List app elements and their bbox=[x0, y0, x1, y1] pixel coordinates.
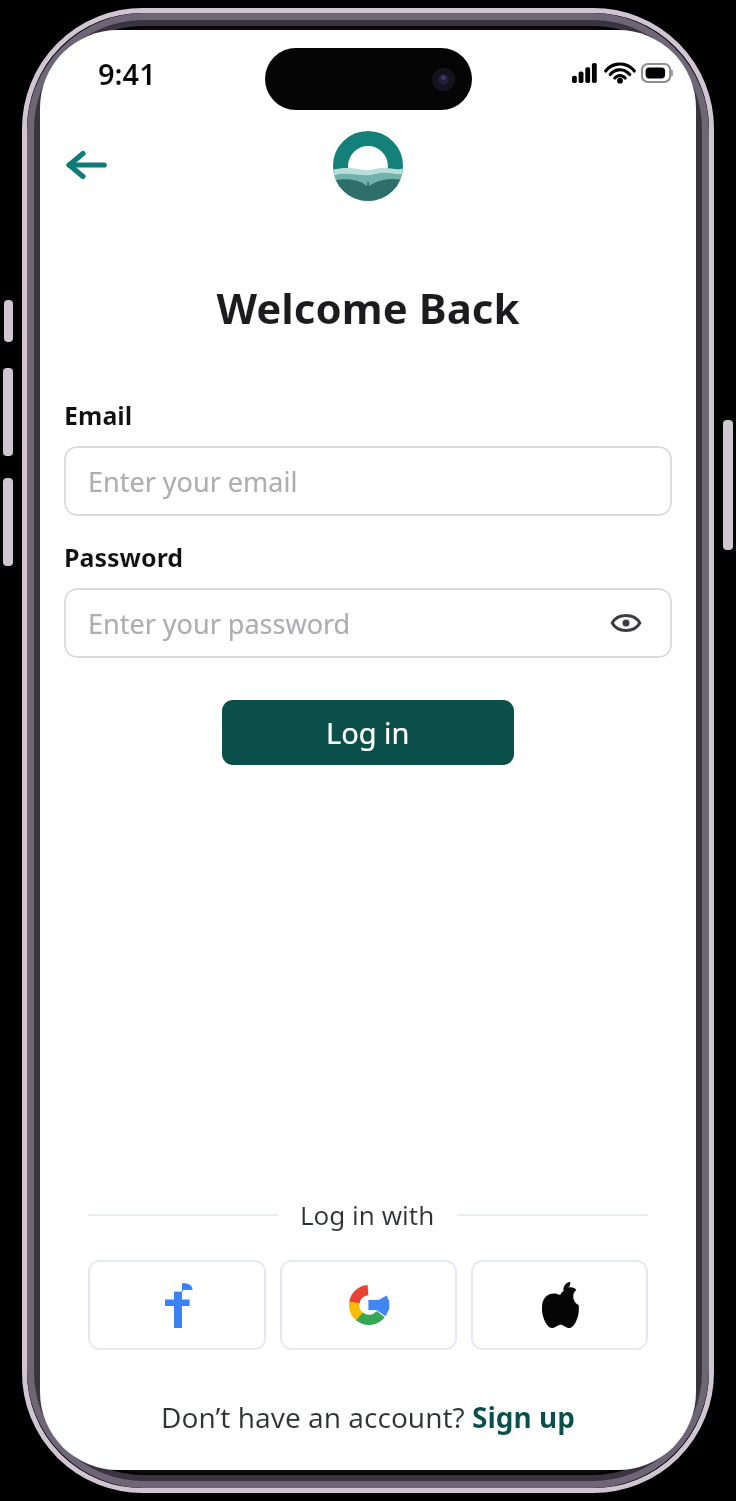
staticText: Password bbox=[64, 540, 184, 574]
staticText: Enter your password bbox=[88, 605, 351, 642]
button[interactable]: Log in bbox=[222, 700, 514, 765]
button[interactable]: Sign up bbox=[472, 1398, 575, 1436]
staticText: Don’t have an account? bbox=[161, 1398, 472, 1436]
button[interactable]: Show password bbox=[604, 601, 648, 645]
staticText: Enter your email bbox=[88, 463, 298, 500]
staticText: Email bbox=[64, 398, 133, 432]
staticText: Welcome Back bbox=[40, 279, 696, 336]
staticText: 9:41 bbox=[98, 54, 156, 93]
button[interactable]: Log in with Apple bbox=[471, 1260, 648, 1350]
staticText: Sign up bbox=[472, 1398, 575, 1436]
staticText: Log in with bbox=[300, 1197, 435, 1232]
button[interactable]: Back bbox=[58, 137, 114, 193]
staticText: Log in bbox=[326, 713, 410, 752]
button[interactable]: Log in with Google bbox=[280, 1260, 457, 1350]
button[interactable]: Enter your email bbox=[64, 446, 672, 516]
button[interactable]: Enter your password bbox=[64, 588, 672, 658]
button[interactable]: Log in with Facebook bbox=[88, 1260, 266, 1350]
